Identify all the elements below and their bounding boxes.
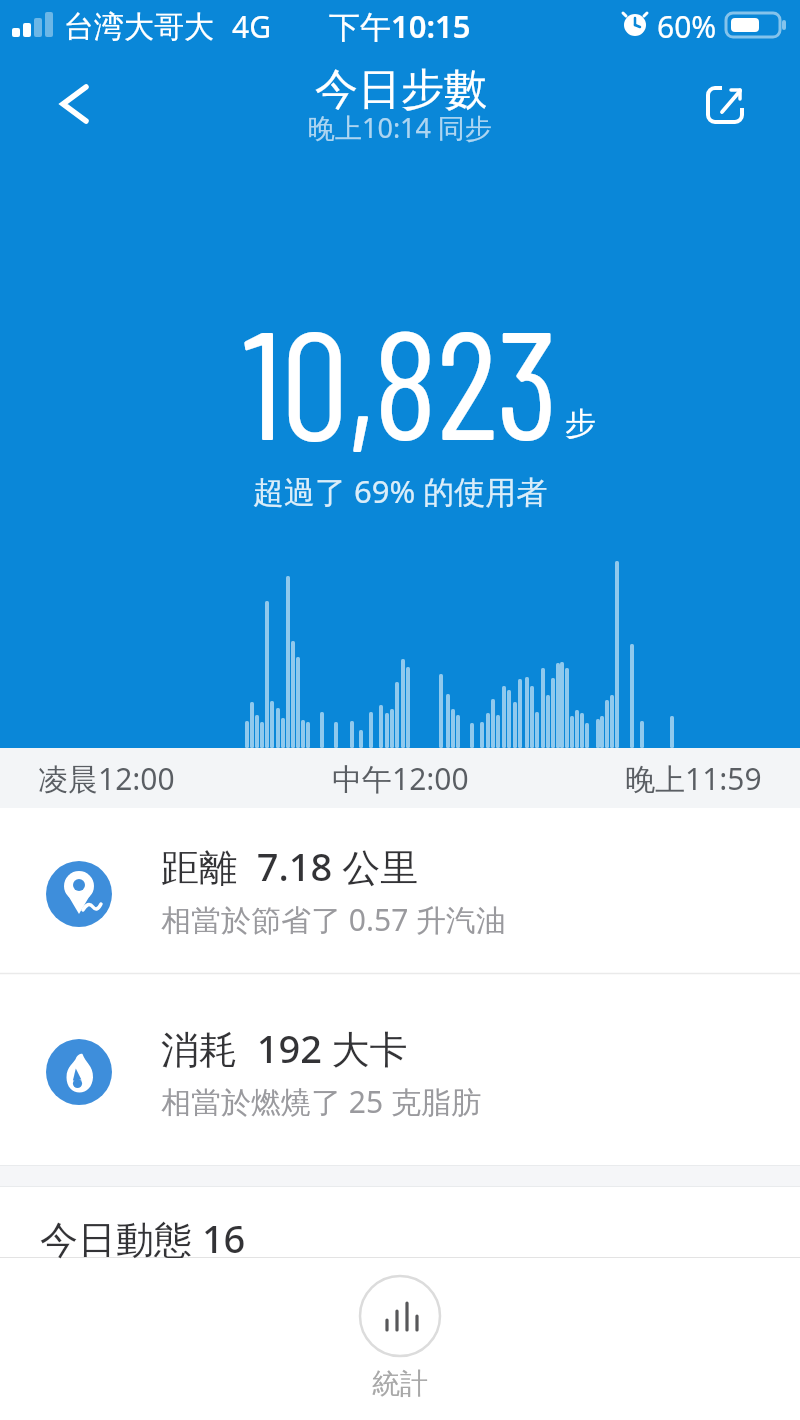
staticText: 距離 7.18 公里	[161, 840, 419, 892]
staticText: 消耗 192 大卡	[161, 1022, 408, 1074]
staticText: 統計	[372, 1366, 428, 1401]
button[interactable]: 距離 7.18 公里	[0, 808, 800, 973]
staticText: 台湾大哥大	[64, 8, 214, 46]
button[interactable]	[48, 70, 108, 134]
staticText: 晚上10:14 同步	[308, 109, 493, 144]
staticText: 今日動態 16	[40, 1212, 246, 1264]
staticText: 晚上11:59	[625, 758, 762, 799]
staticText: 凌晨12:00	[38, 758, 175, 799]
staticText: 超過了 69% 的使用者	[253, 470, 548, 512]
button[interactable]: 消耗 192 大卡	[0, 974, 800, 1165]
staticText: 10,823	[243, 288, 558, 470]
button[interactable]: 統計	[340, 1266, 460, 1396]
staticText: 60%	[657, 6, 717, 47]
staticText: 4G	[232, 6, 271, 47]
staticText: 下午10:15	[329, 5, 471, 47]
staticText: 中午12:00	[332, 758, 469, 799]
staticText: 相當於節省了 0.57 升汽油	[161, 899, 507, 940]
staticText: 步	[565, 404, 596, 443]
button[interactable]	[664, 78, 722, 136]
staticText: 相當於燃燒了 25 克脂肪	[161, 1081, 481, 1122]
staticText: 今日步數	[315, 63, 487, 117]
